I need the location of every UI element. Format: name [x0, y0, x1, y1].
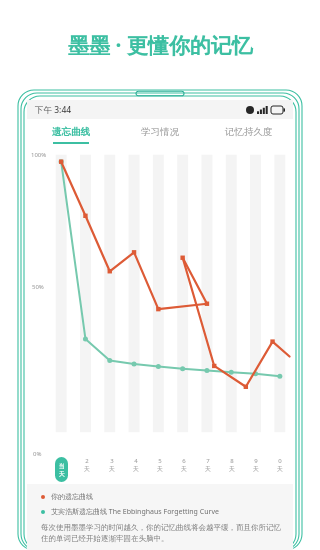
button[interactable]: 3天 [108, 457, 116, 473]
staticText: 下午 3:44 [35, 104, 72, 116]
button[interactable]: 0天 [276, 457, 284, 473]
staticText: 你的遗忘曲线 [51, 492, 93, 501]
staticText: 遗忘曲线 [52, 126, 90, 138]
button[interactable]: 当天 [55, 457, 68, 482]
button[interactable]: 遗忘曲线 [27, 119, 115, 150]
staticText: 0% [33, 450, 42, 458]
button[interactable]: 2天 [83, 457, 91, 473]
button[interactable]: 7天 [204, 457, 212, 473]
staticText: 50% [32, 283, 44, 291]
button[interactable]: 记忆持久度 [204, 119, 293, 150]
staticText: 每次使用墨墨学习的时间越久，你的记忆曲线将会越平缓，而且你所记忆住的单词已经开始… [41, 523, 283, 543]
staticText: 记忆持久度 [225, 126, 273, 138]
staticText: 当天 [58, 462, 66, 478]
button[interactable]: 5天 [156, 457, 164, 473]
button[interactable]: 学习情况 [115, 119, 204, 150]
staticText: 学习情况 [141, 126, 179, 138]
staticText: 艾宾浩斯遗忘曲线 The Ebbinghaus Forgetting Curve [51, 507, 219, 517]
staticText: 100% [31, 151, 47, 159]
staticText: 墨墨 · 更懂你的记忆 [68, 31, 253, 60]
button[interactable]: 9天 [252, 457, 260, 473]
button[interactable]: 8天 [228, 457, 236, 473]
button[interactable]: 6天 [180, 457, 188, 473]
button[interactable]: 4天 [132, 457, 140, 473]
